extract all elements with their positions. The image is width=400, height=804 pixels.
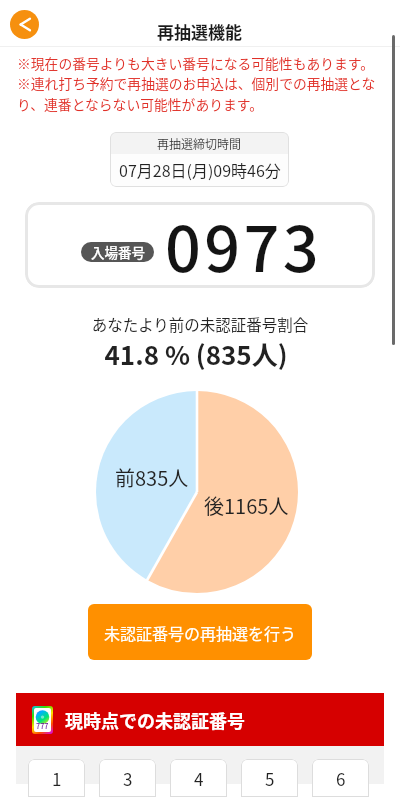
staticText: あなたより前の未認証番号割合	[0, 313, 400, 335]
staticText: 777	[36, 721, 49, 731]
button[interactable]: 未認証番号の再抽選を行う	[88, 604, 312, 660]
staticText: 現時点での未認証番号	[65, 707, 245, 733]
staticText: 未認証番号の再抽選を行う	[104, 621, 297, 644]
button[interactable]: 1	[28, 759, 85, 797]
staticText: 再抽選締切時間	[157, 135, 242, 152]
staticText: 再抽選機能	[157, 19, 242, 44]
staticText: 5	[265, 766, 275, 791]
button[interactable]: 5	[241, 759, 298, 797]
staticText: 07月28日(月)09時46分	[119, 158, 281, 181]
staticText: 入場番号	[91, 242, 145, 262]
staticText: ※現在の番号よりも大きい番号になる可能性もあります。	[17, 53, 375, 73]
button[interactable]: Back	[10, 10, 39, 39]
staticText: ※連れ打ち予約で再抽選のお申込は、個別での再抽選となり、連番とならない可能性があ…	[17, 73, 381, 113]
button[interactable]: 4	[170, 759, 227, 797]
staticText: 前835人	[115, 463, 189, 492]
staticText: 6	[336, 766, 346, 791]
staticText: 41.8 % (835人)	[0, 335, 396, 373]
staticText: 3	[123, 766, 133, 791]
button[interactable]: 6	[312, 759, 369, 797]
staticText: 0973	[165, 202, 322, 285]
staticText: 1	[52, 766, 62, 791]
button[interactable]: 3	[99, 759, 156, 797]
staticText: 後1165人	[204, 491, 289, 520]
staticText: 4	[194, 766, 204, 791]
